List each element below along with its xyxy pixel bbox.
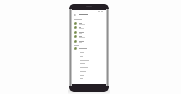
- button[interactable]: [80, 70, 109, 74]
- button[interactable]: [72, 47, 106, 52]
- button[interactable]: [72, 26, 106, 31]
- button[interactable]: Back: [73, 13, 76, 16]
- button[interactable]: [72, 40, 106, 45]
- button[interactable]: [72, 31, 106, 36]
- button[interactable]: [80, 51, 109, 55]
- button[interactable]: [80, 74, 109, 78]
- button[interactable]: [80, 66, 109, 70]
- button[interactable]: [80, 62, 109, 66]
- button[interactable]: [80, 55, 109, 59]
- button[interactable]: [72, 35, 106, 40]
- button[interactable]: [80, 59, 109, 63]
- button[interactable]: [80, 77, 109, 81]
- button[interactable]: [72, 22, 106, 27]
